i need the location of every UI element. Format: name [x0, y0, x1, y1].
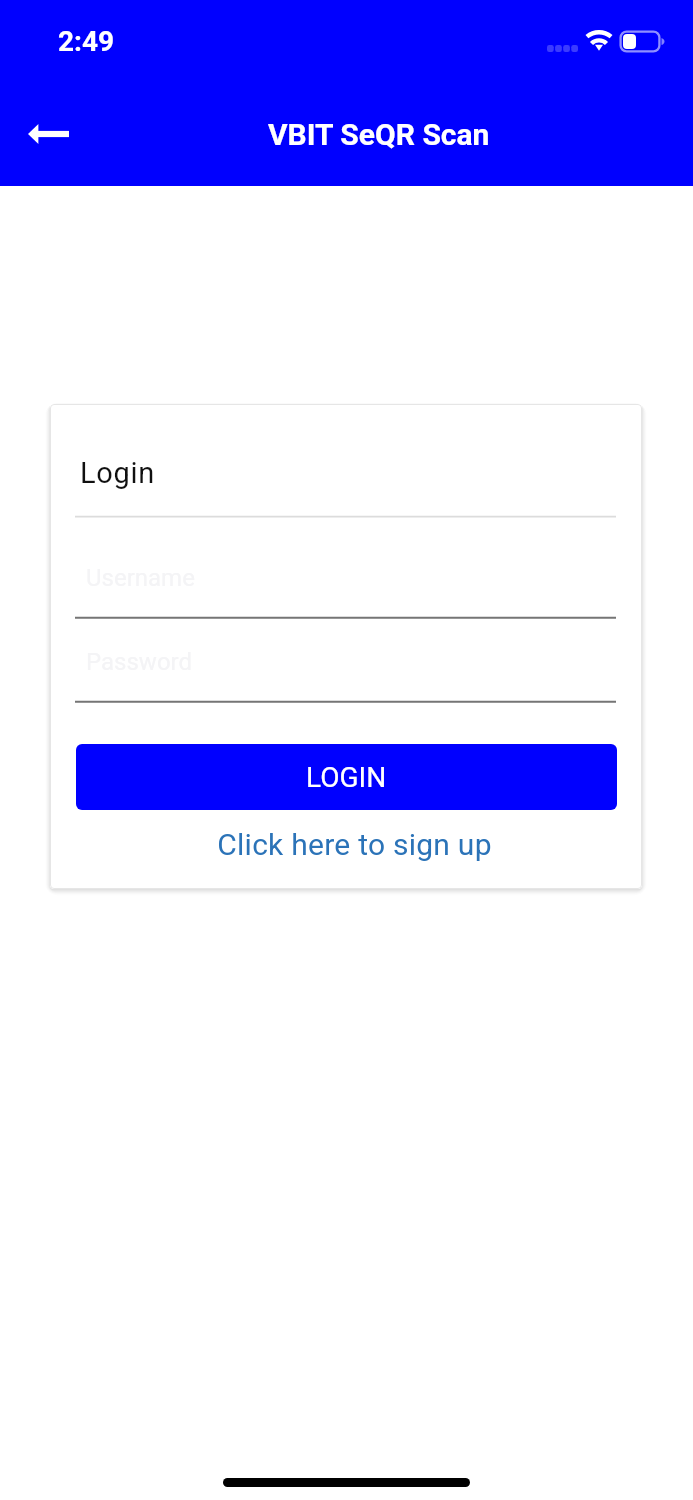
- staticText: Password: [86, 648, 193, 676]
- staticText: Login: [80, 456, 156, 490]
- button[interactable]: Back: [9, 104, 87, 164]
- button[interactable]: LOGIN: [76, 744, 617, 810]
- staticText: Username: [86, 564, 195, 592]
- button[interactable]: Click here to sign up: [75, 814, 616, 874]
- staticText: Click here to sign up: [217, 827, 492, 862]
- staticText: VBIT SeQR Scan: [268, 117, 490, 152]
- staticText: 2:49: [58, 25, 115, 58]
- button[interactable]: Password: [75, 634, 616, 704]
- staticText: LOGIN: [306, 761, 387, 794]
- button[interactable]: Username: [75, 550, 616, 620]
